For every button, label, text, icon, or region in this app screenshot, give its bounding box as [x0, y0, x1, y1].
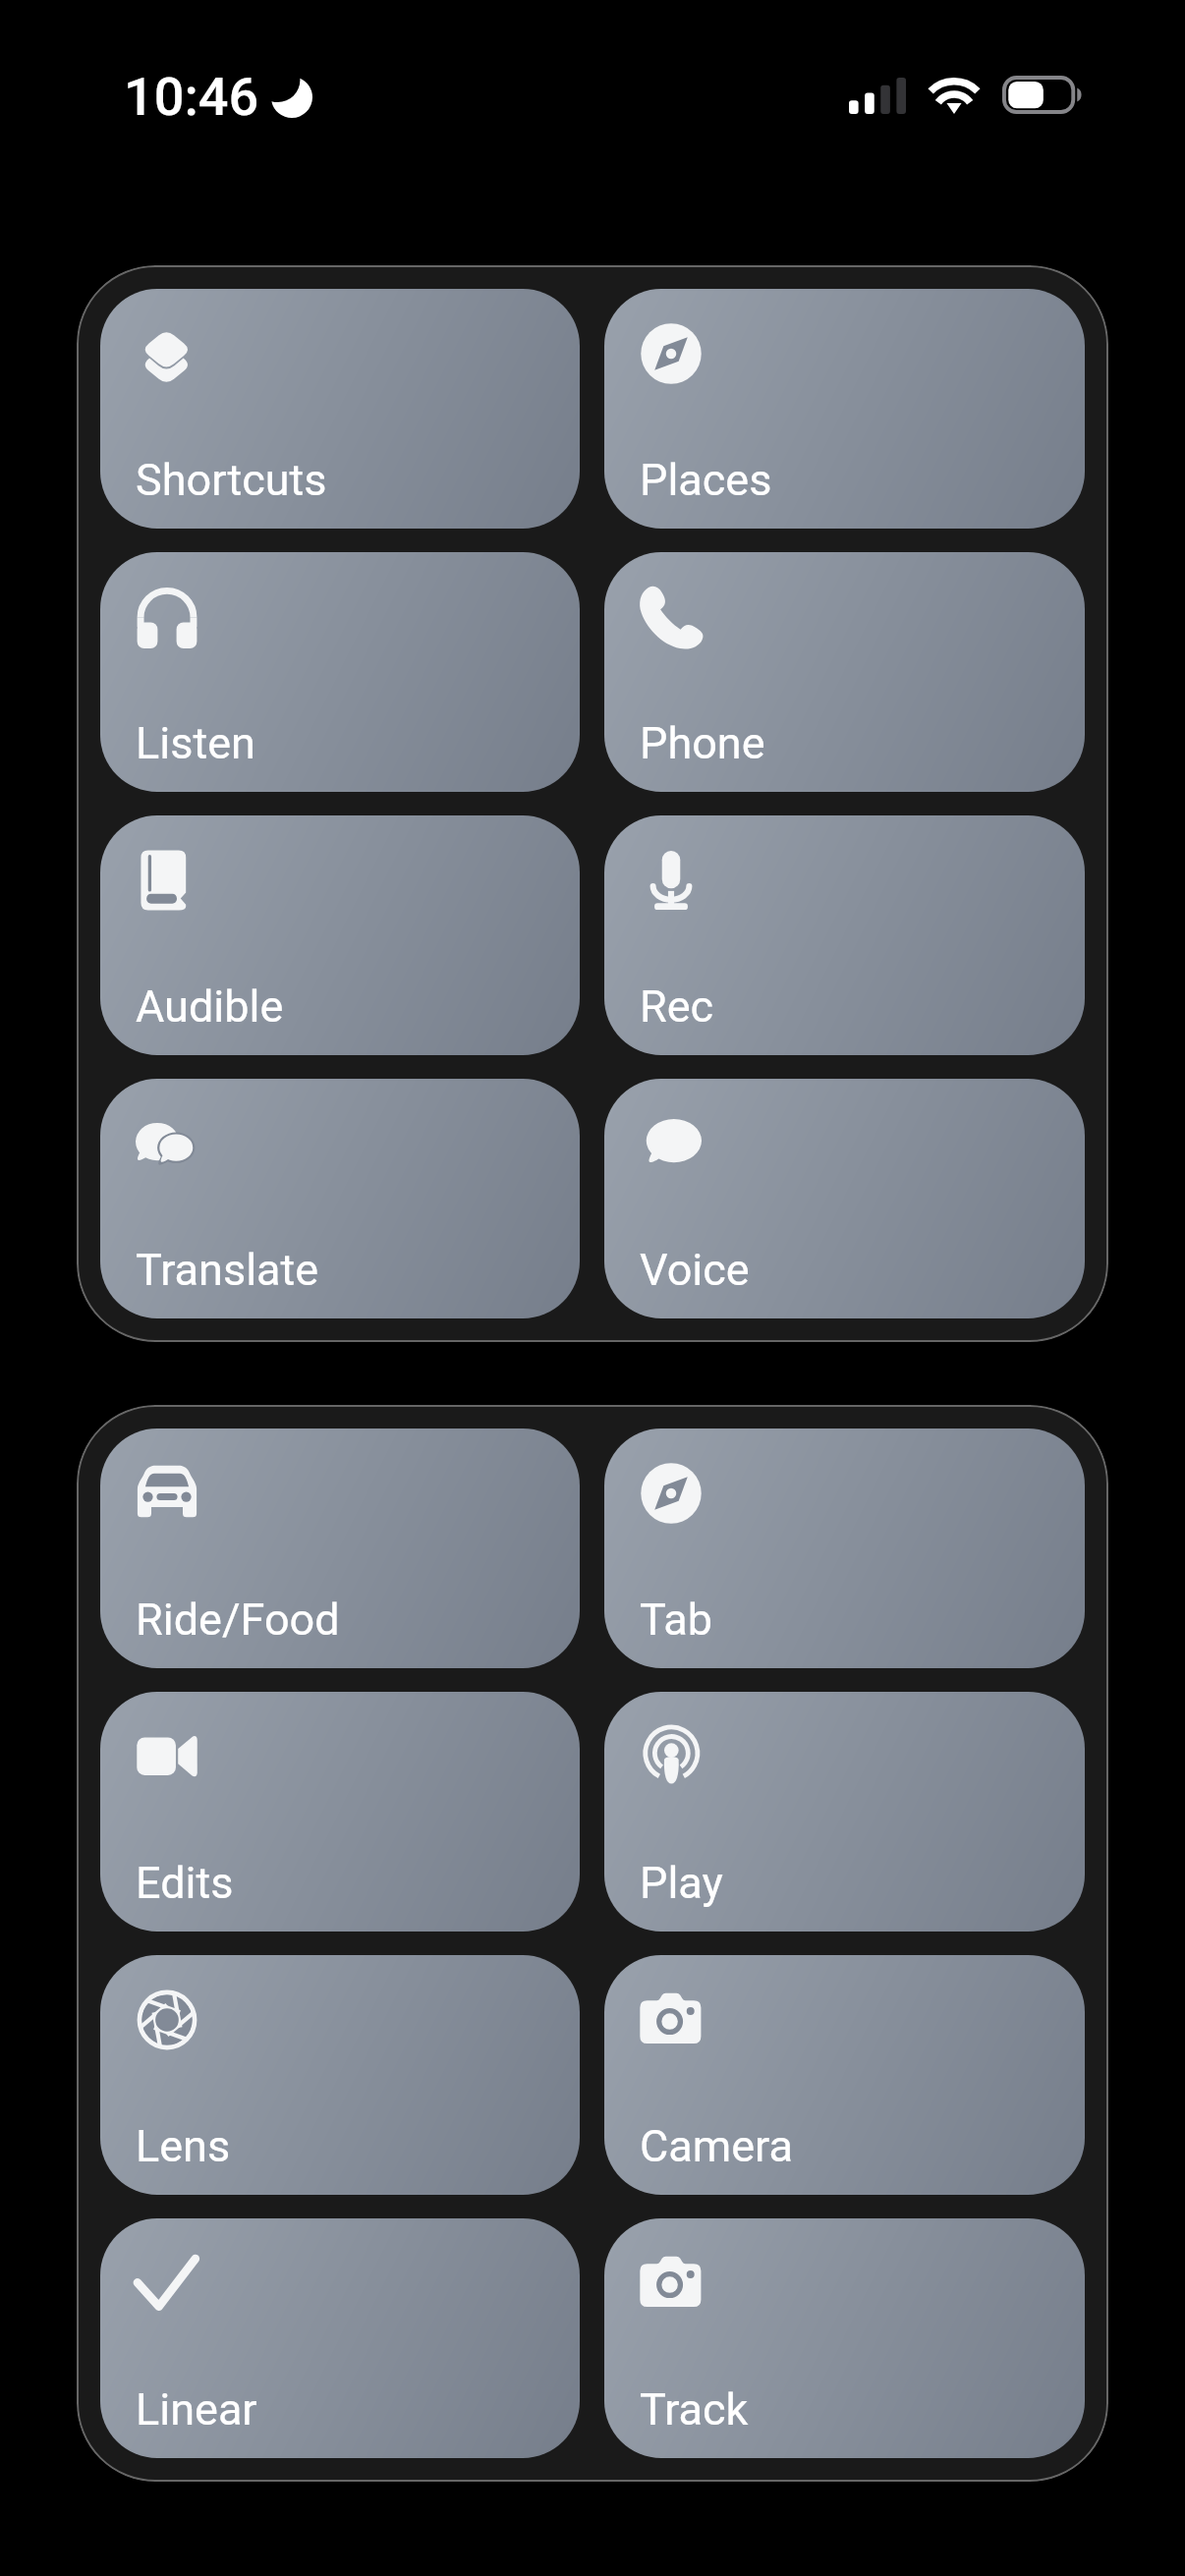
staticText: Shortcuts: [136, 454, 327, 506]
staticText: Track: [640, 2383, 749, 2436]
staticText: Rec: [640, 980, 714, 1033]
button[interactable]: Voice: [604, 1079, 1085, 1318]
staticText: Tab: [640, 1594, 713, 1646]
button[interactable]: Audible: [100, 815, 580, 1055]
button[interactable]: Lens: [100, 1955, 580, 2195]
button[interactable]: Ride/Food: [100, 1428, 580, 1668]
staticText: Camera: [640, 2120, 793, 2172]
button[interactable]: Translate: [100, 1079, 580, 1318]
staticText: Play: [640, 1857, 723, 1909]
button[interactable]: Listen: [100, 552, 580, 792]
staticText: Translate: [136, 1244, 319, 1296]
staticText: Audible: [136, 980, 284, 1033]
button[interactable]: Linear: [100, 2218, 580, 2458]
staticText: 10:46: [124, 66, 259, 128]
button[interactable]: Shortcuts: [100, 289, 580, 529]
button[interactable]: Play: [604, 1692, 1085, 1932]
button[interactable]: Places: [604, 289, 1085, 529]
staticText: Edits: [136, 1857, 234, 1909]
button[interactable]: Camera: [604, 1955, 1085, 2195]
button[interactable]: Rec: [604, 815, 1085, 1055]
staticText: Ride/Food: [136, 1594, 340, 1646]
button[interactable]: Phone: [604, 552, 1085, 792]
staticText: Listen: [136, 717, 255, 769]
staticText: Places: [640, 454, 772, 506]
button[interactable]: Tab: [604, 1428, 1085, 1668]
button[interactable]: Track: [604, 2218, 1085, 2458]
staticText: Lens: [136, 2120, 231, 2172]
staticText: Linear: [136, 2383, 257, 2436]
staticText: Voice: [640, 1244, 750, 1296]
staticText: Phone: [640, 717, 765, 769]
button[interactable]: Edits: [100, 1692, 580, 1932]
